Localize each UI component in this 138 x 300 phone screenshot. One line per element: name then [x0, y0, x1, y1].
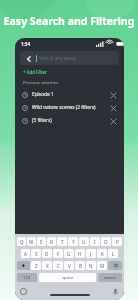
- button[interactable]: M: [97, 261, 107, 270]
- button[interactable]: K: [97, 249, 107, 258]
- button[interactable]: G: [64, 249, 74, 258]
- button[interactable]: Dictation: [112, 288, 119, 295]
- button[interactable]: A: [21, 249, 30, 258]
- staticText: 123: [23, 275, 31, 281]
- staticText: + Add Filter: [23, 69, 47, 75]
- button[interactable]: Remove Wild nature scenes (2 filters): [109, 104, 117, 112]
- staticText: R: [50, 239, 53, 245]
- staticText: H: [78, 251, 82, 257]
- button[interactable]: B: [75, 261, 85, 270]
- staticText: X: [46, 263, 49, 269]
- button[interactable]: (5 filters): [15, 114, 124, 127]
- staticText: Easy Search and Filtering: [0, 14, 138, 28]
- staticText: S: [35, 251, 38, 257]
- staticText: Episode 1: [32, 91, 54, 98]
- button[interactable]: I: [90, 237, 100, 246]
- staticText: E: [40, 239, 43, 245]
- staticText: F: [57, 251, 60, 257]
- button[interactable]: U: [79, 237, 89, 246]
- button[interactable]: L: [108, 249, 118, 258]
- staticText: T: [61, 239, 64, 245]
- staticText: M: [100, 263, 105, 269]
- staticText: (5 filters): [32, 117, 52, 124]
- button[interactable]: Back: [20, 51, 119, 65]
- button[interactable]: Remove Episode 1: [109, 91, 117, 99]
- button[interactable]: N: [86, 261, 96, 270]
- staticText: U: [82, 239, 86, 245]
- button[interactable]: H: [75, 249, 85, 258]
- button[interactable]: 123: [17, 273, 37, 282]
- staticText: space: [62, 275, 74, 281]
- staticText: N: [89, 263, 93, 269]
- staticText: B: [79, 263, 82, 269]
- button[interactable]: D: [42, 249, 52, 258]
- staticText: return: [104, 275, 117, 281]
- button[interactable]: Remove (5 filters): [109, 117, 117, 125]
- button[interactable]: space: [39, 273, 96, 282]
- button[interactable]: Backspace: [108, 261, 122, 270]
- button[interactable]: T: [57, 237, 67, 246]
- button[interactable]: E: [37, 237, 46, 246]
- staticText: C: [57, 263, 60, 269]
- staticText: O: [104, 239, 108, 245]
- button[interactable]: W: [27, 237, 36, 246]
- staticText: Q: [20, 239, 24, 245]
- staticText: I: [94, 239, 96, 245]
- button[interactable]: Episode 1: [15, 88, 124, 101]
- button[interactable]: + Add Filter: [15, 66, 124, 77]
- button[interactable]: C: [53, 261, 63, 270]
- staticText: 1:34: [21, 41, 30, 47]
- button[interactable]: Shift: [17, 261, 30, 270]
- button[interactable]: P: [112, 237, 122, 246]
- staticText: Previous searches: [23, 80, 59, 86]
- button[interactable]: Y: [68, 237, 78, 246]
- button[interactable]: Z: [31, 261, 41, 270]
- button[interactable]: F: [53, 249, 63, 258]
- button[interactable]: Wild nature scenes (2 filters): [15, 101, 124, 114]
- button[interactable]: return: [98, 273, 122, 282]
- staticText: Wild nature scenes (2 filters): [32, 104, 96, 111]
- button[interactable]: R: [47, 237, 56, 246]
- staticText: Search any query: [39, 55, 77, 61]
- staticText: J: [90, 251, 92, 257]
- button[interactable]: Q: [17, 237, 26, 246]
- button[interactable]: V: [64, 261, 74, 270]
- button[interactable]: O: [101, 237, 111, 246]
- button[interactable]: Back: [24, 54, 33, 63]
- staticText: A: [24, 251, 27, 257]
- staticText: V: [68, 263, 71, 269]
- button[interactable]: X: [42, 261, 52, 270]
- staticText: Y: [72, 239, 75, 245]
- button[interactable]: J: [86, 249, 96, 258]
- button[interactable]: S: [31, 249, 41, 258]
- button[interactable]: Emoji: [20, 288, 27, 295]
- staticText: G: [67, 251, 71, 257]
- staticText: D: [45, 251, 49, 257]
- staticText: P: [116, 239, 119, 245]
- staticText: L: [112, 251, 115, 257]
- staticText: Z: [35, 263, 38, 269]
- staticText: W: [29, 239, 34, 245]
- staticText: K: [101, 251, 104, 257]
